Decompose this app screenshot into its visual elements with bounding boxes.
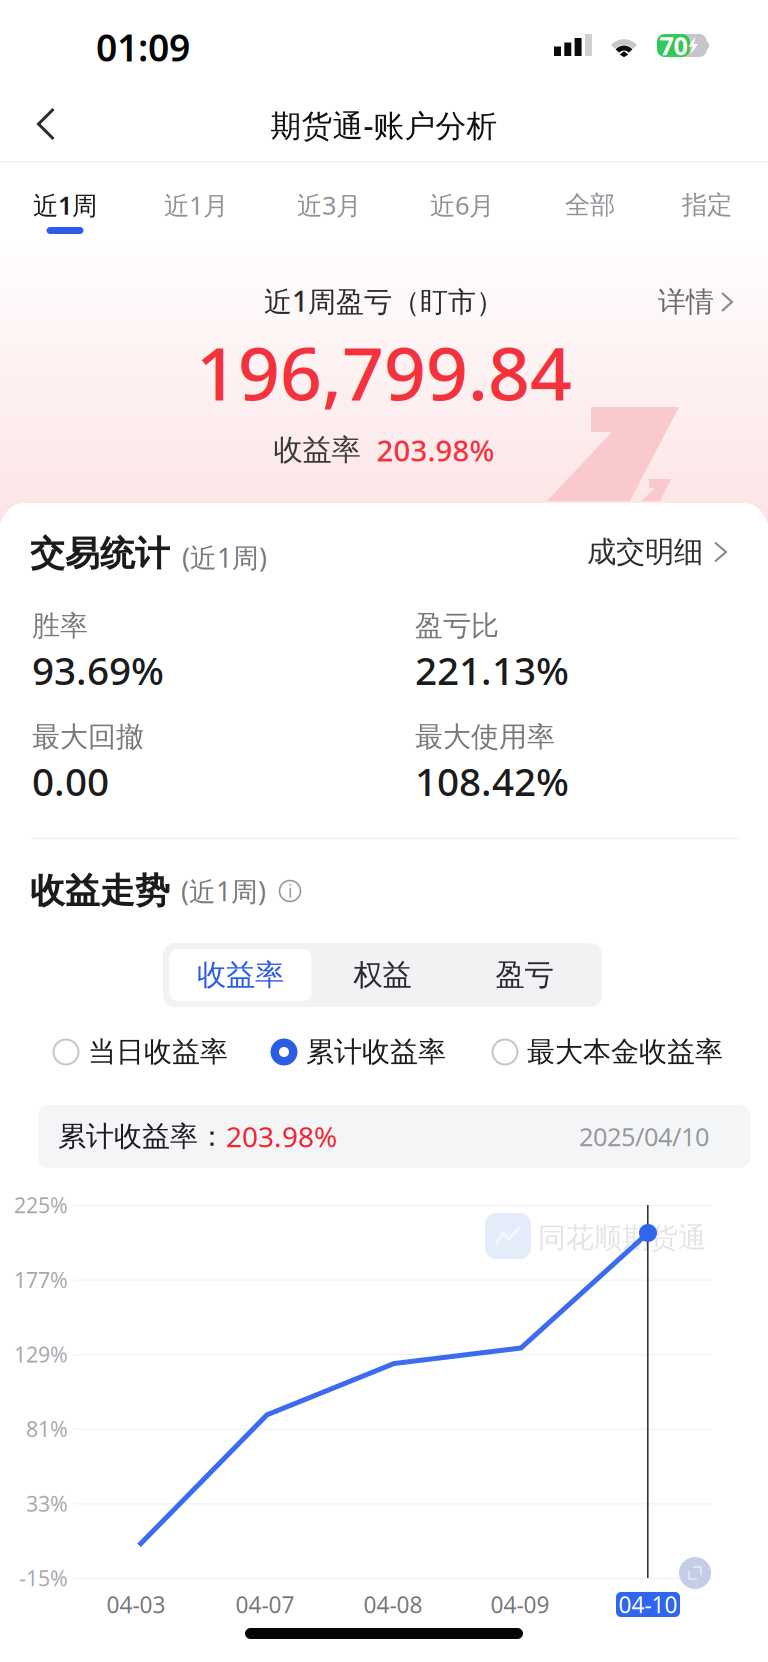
button[interactable]: Expand chart [679, 1557, 711, 1589]
button[interactable]: 累计收益率 [270, 1030, 446, 1074]
button[interactable]: 详情 [640, 277, 751, 327]
staticText: 胜率 [32, 609, 88, 643]
staticText: 成交明细 [587, 534, 703, 570]
staticText: 盈亏比 [415, 609, 499, 643]
staticText: 权益 [353, 957, 411, 993]
button[interactable]: 近6月 [402, 179, 522, 243]
staticText: -15% [19, 1564, 68, 1592]
staticText: 93.69% [32, 644, 164, 696]
staticText: 04-03 [106, 1589, 165, 1619]
staticText: 225% [14, 1191, 68, 1219]
staticText: 收益率 [197, 957, 284, 993]
button[interactable]: 指定 [647, 179, 767, 243]
staticText: 108.42% [415, 755, 569, 807]
staticText: 04-09 [490, 1589, 549, 1619]
button[interactable]: 权益 [311, 949, 453, 1001]
staticText: i [288, 879, 292, 902]
staticText: 203.98% [376, 430, 494, 469]
staticText: 期货通-账户分析 [270, 105, 497, 145]
staticText: 04-08 [363, 1589, 422, 1619]
button[interactable]: 全部 [530, 179, 650, 243]
staticText: 近1周 [33, 188, 97, 222]
staticText: 2025/04/10 [579, 1120, 709, 1153]
staticText: 203.98% [226, 1118, 337, 1155]
staticText: 221.13% [415, 644, 569, 696]
staticText: 近1月 [164, 188, 228, 222]
staticText: 累计收益率 [306, 1035, 446, 1069]
button[interactable]: 最大本金收益率 [491, 1030, 723, 1074]
staticText: 04-10 [618, 1589, 677, 1619]
staticText: 最大回撤 [32, 720, 144, 754]
staticText: 盈亏 [495, 957, 553, 993]
staticText: 累计收益率： [58, 1119, 226, 1154]
button[interactable]: 近3月 [269, 179, 389, 243]
staticText: 04-07 [235, 1589, 294, 1619]
staticText: 收益率 [273, 432, 360, 468]
staticText: 33% [26, 1489, 68, 1517]
staticText: 全部 [565, 189, 615, 220]
staticText: 最大使用率 [415, 720, 555, 754]
staticText: 详情 [658, 285, 714, 319]
button[interactable]: Back [11, 91, 81, 157]
staticText: 129% [14, 1340, 68, 1368]
button[interactable]: 盈亏 [453, 949, 595, 1001]
button[interactable]: 成交明细 [587, 529, 727, 575]
staticText: 近3月 [297, 188, 361, 222]
staticText: 同花顺期货通 [538, 1221, 706, 1255]
staticText: 0.00 [32, 755, 109, 807]
button[interactable]: 近1周 [5, 179, 125, 243]
staticText: 01:09 [96, 22, 190, 72]
staticText: 177% [14, 1265, 68, 1294]
staticText: 当日收益率 [88, 1035, 228, 1069]
staticText: 196,799.84 [196, 323, 572, 421]
staticText: 指定 [682, 189, 732, 220]
staticText: (近1周) [182, 540, 267, 575]
staticText: 81% [26, 1415, 68, 1443]
button[interactable]: 当日收益率 [52, 1030, 228, 1074]
staticText: 70 [659, 29, 687, 62]
staticText: 交易统计 [30, 532, 170, 575]
button[interactable]: 收益率 [169, 949, 311, 1001]
staticText: (近1周) [181, 873, 266, 909]
button[interactable]: 近1月 [136, 179, 256, 243]
staticText: 近6月 [430, 188, 494, 222]
staticText: 近1周盈亏（盯市） [264, 282, 504, 320]
staticText: 收益走势 [30, 870, 170, 912]
staticText: 最大本金收益率 [527, 1035, 723, 1069]
